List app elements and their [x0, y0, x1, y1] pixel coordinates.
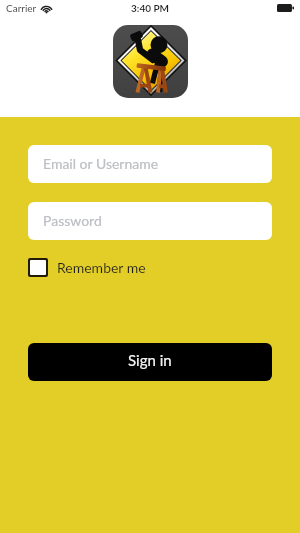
staticText: Remember me [57, 259, 146, 276]
button[interactable]: Sign in [28, 343, 272, 381]
staticText: Email or Username [43, 155, 159, 172]
staticText: Sign in [128, 351, 172, 369]
staticText: Password [43, 212, 102, 229]
staticText: 3:40 PM [131, 2, 170, 14]
button[interactable]: Remember me [28, 258, 146, 277]
button[interactable]: Email or Username [28, 145, 272, 183]
button[interactable]: Password [28, 202, 272, 240]
staticText: Carrier [6, 2, 37, 14]
